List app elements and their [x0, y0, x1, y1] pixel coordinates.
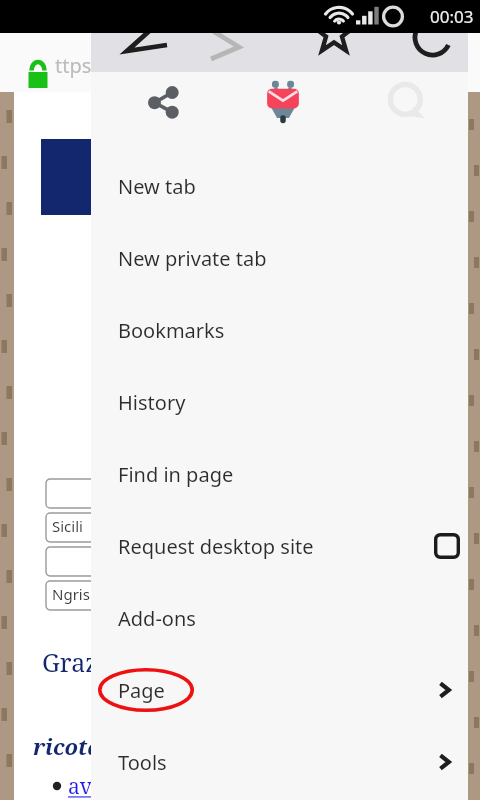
- staticText: Find in page: [118, 461, 234, 488]
- button[interactable]: Share: [123, 72, 203, 132]
- staticText: Request desktop site: [118, 533, 314, 560]
- staticText: History: [118, 389, 186, 416]
- staticText: ttps: [55, 52, 92, 79]
- button[interactable]: Page: [91, 654, 468, 726]
- staticText: av: [68, 772, 92, 800]
- button[interactable]: Send page to device: [243, 72, 323, 132]
- staticText: Page: [118, 677, 165, 704]
- staticText: Bookmarks: [118, 317, 225, 344]
- staticText: Sicili: [52, 516, 83, 536]
- button[interactable]: Search with assistant: [367, 72, 447, 132]
- button[interactable]: Find in page: [91, 438, 468, 510]
- staticText: New private tab: [118, 245, 267, 272]
- staticText: Tools: [118, 749, 167, 776]
- staticText: 00:03: [430, 5, 474, 28]
- button[interactable]: Request desktop site: [91, 510, 468, 582]
- staticText: ricota: [33, 731, 102, 761]
- staticText: Grazi: [42, 645, 106, 679]
- button[interactable]: Bookmarks: [91, 294, 468, 366]
- button[interactable]: Tools: [91, 726, 468, 798]
- button[interactable]: New tab: [91, 150, 468, 222]
- staticText: New tab: [118, 173, 196, 200]
- button[interactable]: Add-ons: [91, 582, 468, 654]
- staticText: Add-ons: [118, 605, 196, 632]
- button[interactable]: New private tab: [91, 222, 468, 294]
- staticText: Ngris: [52, 584, 90, 604]
- button[interactable]: History: [91, 366, 468, 438]
